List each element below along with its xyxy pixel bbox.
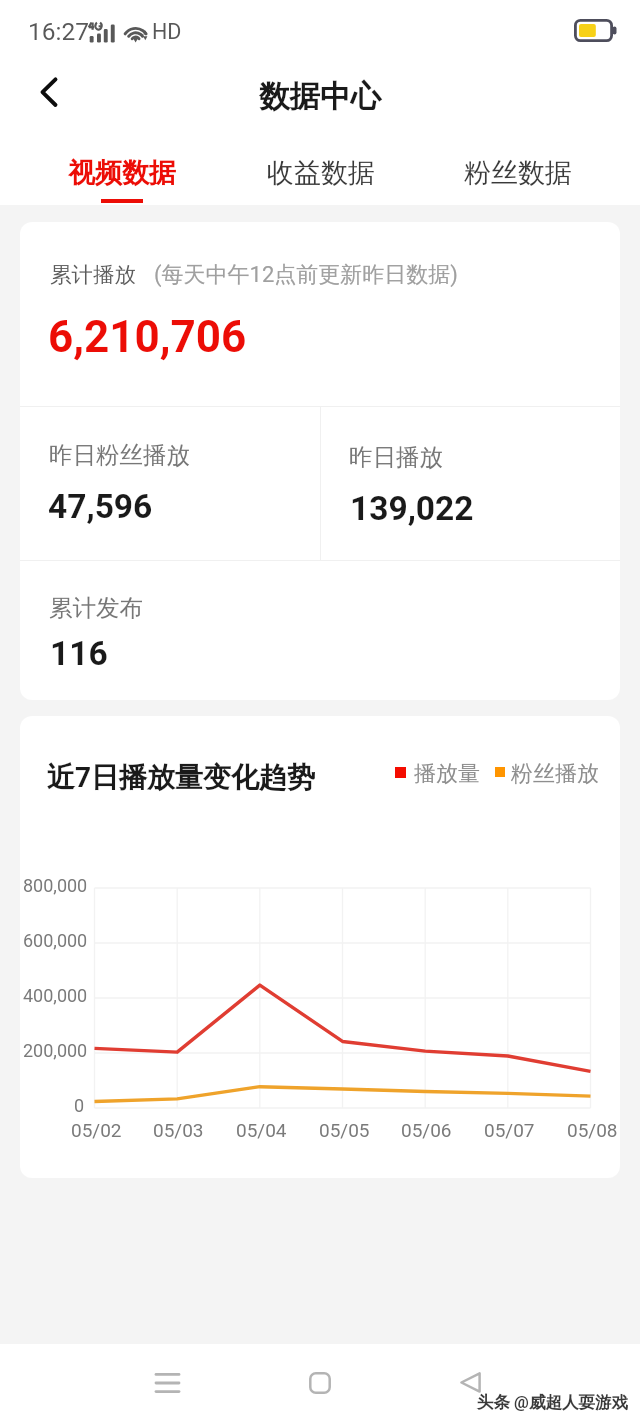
button[interactable]: Back — [8, 61, 74, 127]
staticText: 400,000 — [23, 985, 88, 1006]
staticText: 200,000 — [23, 1040, 88, 1061]
staticText: 0 — [74, 1095, 85, 1116]
button[interactable]: 视频数据 — [36, 131, 208, 205]
staticText: 600,000 — [23, 930, 88, 951]
staticText: 800,000 — [23, 875, 88, 896]
staticText: 头条 @威超人耍游戏 — [477, 1392, 640, 1413]
staticText: 收益数据 — [267, 156, 375, 190]
staticText: 05/04 — [236, 1119, 287, 1141]
staticText: 累计播放 — [50, 261, 136, 288]
staticText: 05/03 — [153, 1119, 204, 1141]
staticText: 粉丝数据 — [464, 156, 572, 190]
button[interactable]: Recent apps — [117, 1344, 217, 1422]
staticText: 116 — [50, 634, 108, 673]
staticText: 05/06 — [401, 1119, 452, 1141]
button[interactable]: 粉丝数据 — [432, 131, 604, 205]
staticText: HD — [152, 19, 182, 44]
staticText: 05/05 — [319, 1119, 370, 1141]
staticText: 视频数据 — [68, 156, 176, 190]
staticText: 累计发布 — [49, 593, 143, 623]
staticText: 昨日播放 — [349, 442, 443, 472]
staticText: 05/02 — [71, 1119, 122, 1141]
staticText: 139,022 — [350, 489, 474, 528]
staticText: (每天中午12点前更新昨日数据) — [154, 261, 458, 289]
staticText: 近7日播放量变化趋势 — [47, 760, 316, 795]
staticText: 粉丝播放 — [511, 760, 599, 788]
staticText: 6,210,706 — [48, 311, 247, 363]
staticText: 数据中心 — [259, 78, 381, 116]
button[interactable]: Home — [270, 1344, 370, 1422]
staticText: 16:27 — [28, 17, 90, 46]
button[interactable]: Back — [421, 1344, 521, 1422]
staticText: 05/07 — [484, 1119, 535, 1141]
staticText: 47,596 — [48, 487, 153, 526]
staticText: 昨日粉丝播放 — [49, 440, 190, 470]
staticText: 播放量 — [414, 760, 480, 788]
staticText: 05/08 — [567, 1119, 618, 1141]
button[interactable]: 收益数据 — [235, 131, 407, 205]
